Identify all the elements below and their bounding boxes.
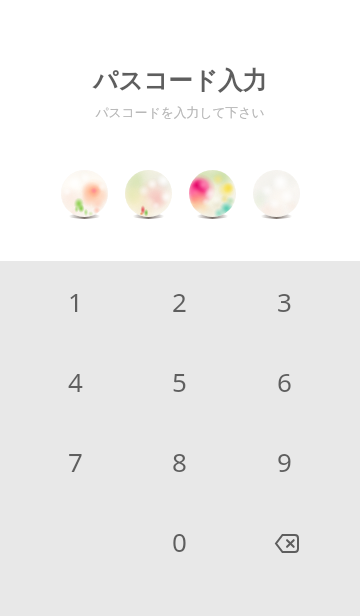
button[interactable]: 3 (232, 261, 337, 341)
other: Backspace (267, 523, 303, 559)
button[interactable]: 4 (23, 341, 127, 421)
staticText: 2 (172, 284, 187, 319)
staticText: 0 (172, 524, 187, 559)
button[interactable]: 7 (23, 421, 127, 501)
staticText: 8 (172, 444, 187, 479)
button[interactable]: 5 (127, 341, 232, 421)
staticText: 4 (68, 364, 83, 399)
button[interactable]: 9 (232, 421, 337, 501)
staticText: 6 (277, 364, 292, 399)
button[interactable]: 0 (127, 501, 232, 581)
button[interactable]: 8 (127, 421, 232, 501)
button[interactable]: 6 (232, 341, 337, 421)
button[interactable]: Delete (232, 501, 337, 581)
staticText: 5 (172, 364, 187, 399)
button[interactable]: 2 (127, 261, 232, 341)
staticText: 3 (277, 284, 292, 319)
staticText: 1 (68, 284, 83, 319)
button[interactable]: 1 (23, 261, 127, 341)
staticText: 9 (277, 444, 292, 479)
staticText: パスコード入力 (93, 65, 267, 96)
staticText: パスコードを入力して下さい (95, 105, 265, 121)
staticText: 7 (68, 444, 83, 479)
